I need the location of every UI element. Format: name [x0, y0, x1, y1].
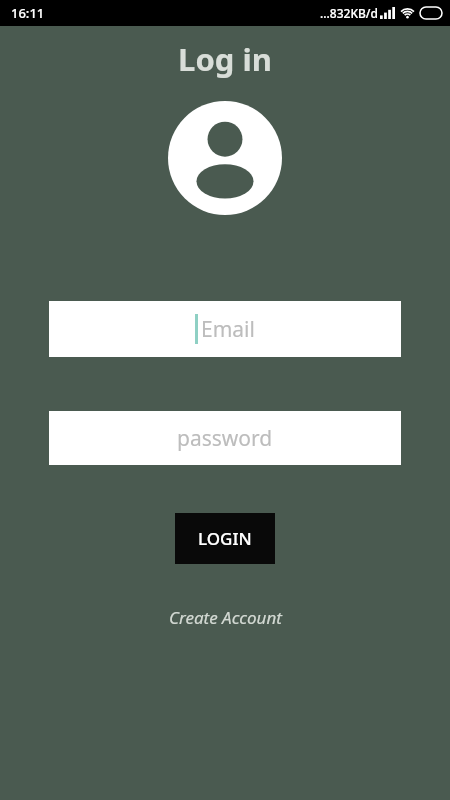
button[interactable]: Create Account: [169, 606, 282, 629]
button[interactable]: password: [49, 411, 401, 465]
staticText: Email: [201, 315, 255, 344]
staticText: Log in: [178, 38, 272, 80]
staticText: LOGIN: [198, 527, 252, 550]
staticText: Create Account: [169, 606, 282, 629]
staticText: ...832KB/d: [320, 5, 378, 21]
staticText: 16:11: [11, 4, 45, 22]
staticText: password: [177, 424, 273, 453]
button[interactable]: Email: [49, 301, 401, 357]
button[interactable]: LOGIN: [175, 513, 275, 564]
